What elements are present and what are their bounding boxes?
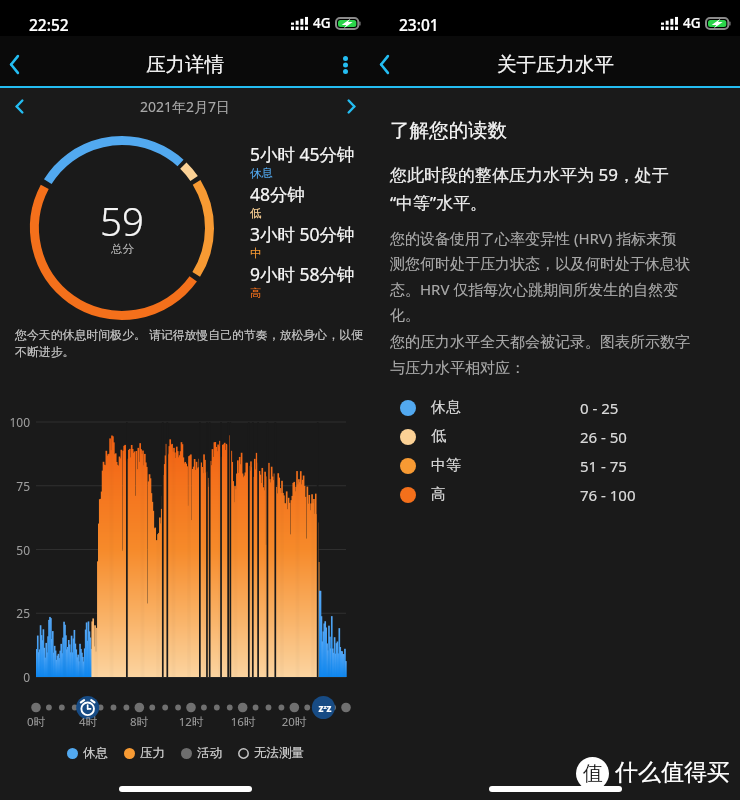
staticText: 0 - 25: [580, 398, 619, 418]
staticText: 9小时 58分钟: [250, 262, 355, 286]
staticText: 高: [431, 485, 446, 504]
staticText: 休息: [250, 166, 273, 180]
staticText: 75: [0, 478, 30, 494]
staticText: 25: [0, 605, 30, 621]
staticText: 休息: [431, 398, 461, 417]
button[interactable]: More options: [318, 36, 370, 86]
staticText: 2021年2月7日: [38, 97, 332, 116]
staticText: 26 - 50: [580, 427, 627, 447]
button[interactable]: 休息: [370, 393, 740, 422]
staticText: zᶻz: [314, 701, 336, 715]
staticText: 4G: [313, 14, 331, 32]
staticText: 22:52: [29, 14, 69, 35]
staticText: 中: [250, 246, 262, 260]
staticText: 4G: [683, 14, 701, 32]
staticText: 12时: [174, 714, 208, 730]
staticText: 了解您的读数: [390, 118, 507, 143]
staticText: 总分: [111, 242, 134, 256]
button[interactable]: Back: [370, 36, 400, 86]
button[interactable]: Previous day: [0, 88, 38, 125]
button[interactable]: Next day: [332, 88, 370, 125]
button[interactable]: Back: [0, 36, 30, 86]
staticText: 8时: [122, 714, 156, 730]
staticText: 48分钟: [250, 182, 306, 206]
staticText: 压力: [140, 745, 165, 761]
staticText: 23:01: [399, 14, 439, 35]
staticText: 值: [583, 761, 603, 786]
staticText: 3小时 50分钟: [250, 222, 355, 246]
staticText: 低: [431, 427, 446, 446]
staticText: 4时: [71, 714, 105, 730]
button[interactable]: 休息: [67, 745, 108, 761]
staticText: 休息: [83, 745, 108, 761]
staticText: 无法测量: [254, 745, 304, 761]
staticText: 您今天的休息时间极少。 请记得放慢自己的节奏，放松身心，以便 不断进步。: [15, 326, 367, 360]
button[interactable]: 无法测量: [238, 745, 304, 761]
staticText: 59: [100, 195, 144, 247]
button[interactable]: 压力: [124, 745, 165, 761]
staticText: 高: [250, 286, 262, 300]
staticText: 活动: [197, 745, 222, 761]
staticText: 0时: [19, 714, 53, 730]
staticText: 您此时段的整体压力水平为 59，处于 “中等”水平。: [390, 163, 730, 214]
staticText: 中等: [431, 456, 461, 475]
staticText: 低: [250, 206, 262, 220]
staticText: 压力详情: [146, 52, 224, 77]
staticText: 5小时 45分钟: [250, 142, 355, 166]
staticText: 100: [0, 414, 30, 430]
button[interactable]: 中等: [370, 451, 740, 480]
button[interactable]: 低: [370, 422, 740, 451]
staticText: 51 - 75: [580, 456, 627, 476]
button[interactable]: 高: [370, 480, 740, 509]
staticText: 50: [0, 542, 30, 558]
button[interactable]: 活动: [181, 745, 222, 761]
staticText: 关于压力水平: [497, 52, 614, 77]
staticText: 什么值得买: [615, 758, 730, 787]
staticText: 20时: [277, 714, 311, 730]
staticText: 76 - 100: [580, 485, 636, 505]
staticText: 0: [0, 669, 30, 685]
staticText: 您的压力水平全天都会被记录。图表所示数字 与压力水平相对应：: [390, 333, 730, 377]
staticText: 16时: [226, 714, 260, 730]
staticText: 您的设备使用了心率变异性 (HRV) 指标来预 测您何时处于压力状态，以及何时处…: [390, 228, 730, 324]
